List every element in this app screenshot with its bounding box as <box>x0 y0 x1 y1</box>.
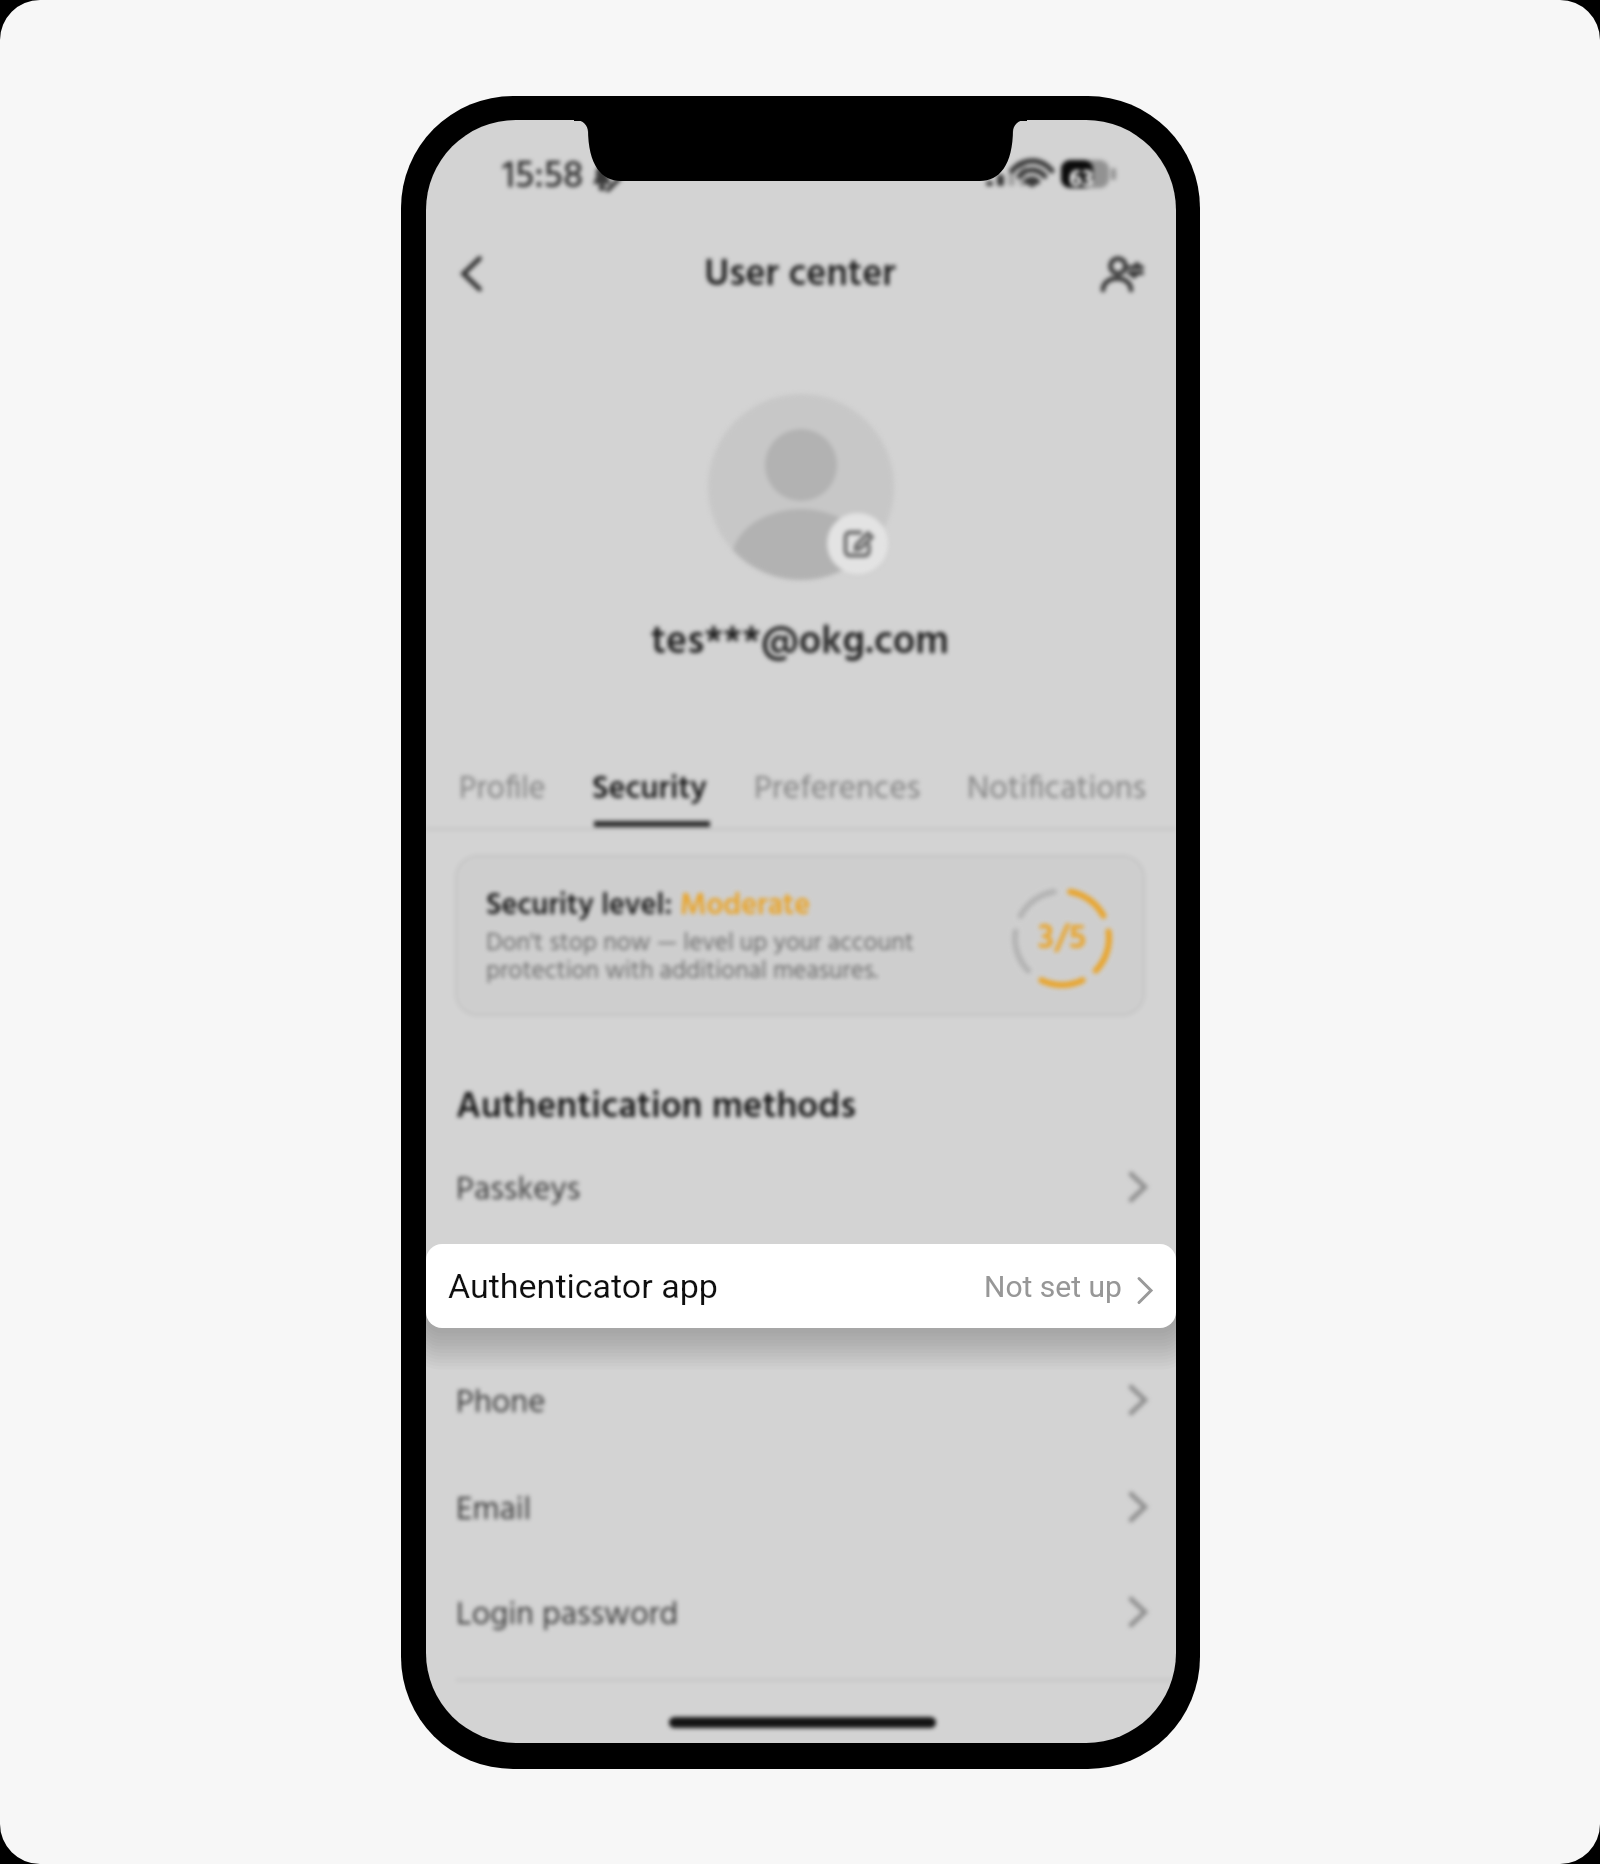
button[interactable] <box>456 856 1144 1015</box>
staticText: User center <box>0 245 1600 306</box>
staticText: Passkeys <box>456 1164 581 1217</box>
button[interactable]: Profile <box>452 757 552 821</box>
staticText: tes***@okg.com <box>0 611 1600 675</box>
button[interactable]: Switch account <box>1090 236 1156 302</box>
staticText: Preferences <box>754 763 921 816</box>
staticText: 3/5 <box>1014 912 1110 966</box>
staticText: Security level: <box>486 882 680 930</box>
staticText: Moderate <box>680 882 811 930</box>
button[interactable]: Login password <box>426 1566 1176 1658</box>
button[interactable]: Back <box>436 234 516 314</box>
staticText: Email <box>456 1484 532 1537</box>
staticText: Security <box>592 764 707 815</box>
staticText: Authentication methods <box>456 1078 857 1137</box>
staticText: Profile <box>459 764 546 815</box>
staticText: Login password <box>456 1589 679 1642</box>
button[interactable]: Edit profile photo <box>827 513 888 574</box>
button[interactable]: Phone <box>426 1354 1176 1446</box>
staticText: Authenticator app <box>448 1266 718 1306</box>
staticText: 15:58 <box>502 147 584 208</box>
staticText: Not set up <box>984 1269 1122 1304</box>
button[interactable]: Security <box>586 757 712 821</box>
button[interactable]: Preferences <box>747 757 927 821</box>
button[interactable]: Notifications <box>961 757 1153 821</box>
button[interactable]: Email <box>426 1461 1176 1553</box>
button[interactable]: Passkeys <box>426 1141 1176 1233</box>
staticText: 63 <box>1063 161 1099 187</box>
staticText: Don't stop now — level up your account p… <box>486 924 914 992</box>
staticText: Phone <box>456 1377 546 1430</box>
button[interactable]: Authenticator app <box>426 1244 1176 1328</box>
staticText: Notifications <box>967 763 1147 816</box>
